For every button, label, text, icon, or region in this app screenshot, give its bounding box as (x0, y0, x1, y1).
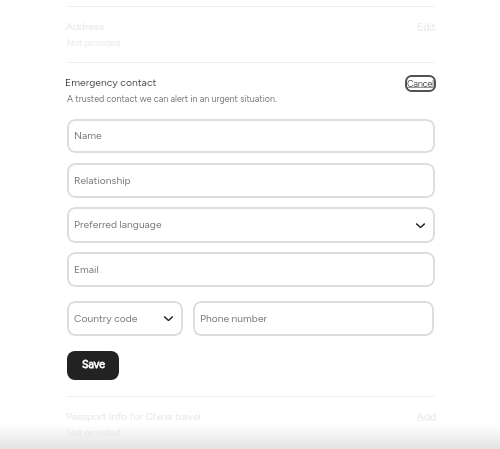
staticText: A trusted contact we can alert in an urg… (67, 93, 277, 104)
button[interactable]: Cancel (405, 75, 436, 92)
staticText: Cancel (407, 78, 434, 89)
staticText: Edit (417, 20, 436, 32)
button[interactable]: Add (413, 407, 433, 424)
staticText: Country code (74, 312, 138, 324)
staticText: Relationship (74, 174, 131, 186)
staticText: Name (74, 129, 102, 141)
button[interactable]: Preferred language (67, 207, 435, 243)
staticText: Save (82, 358, 105, 371)
button[interactable]: Email (67, 252, 435, 287)
staticText: Phone number (200, 312, 267, 324)
staticText: Address (66, 20, 105, 32)
staticText: Emergency contact (65, 76, 157, 88)
button[interactable]: Name (67, 119, 435, 153)
button[interactable]: Save (67, 351, 119, 380)
staticText: Preferred language (74, 218, 162, 230)
button[interactable]: Country code (67, 301, 183, 336)
other: Open Country code picker (164, 314, 173, 323)
staticText: Email (74, 263, 99, 275)
staticText: Not provided (67, 37, 121, 48)
button[interactable]: Passport info for China travel (67, 404, 435, 442)
staticText: Not provided (67, 427, 121, 438)
button[interactable]: Phone number (193, 301, 434, 336)
button[interactable]: Edit (413, 17, 432, 34)
button[interactable]: Relationship (67, 163, 435, 198)
staticText: Passport info for China travel (66, 410, 201, 422)
staticText: Add (417, 410, 437, 422)
other: Open Preferred language picker (416, 221, 425, 230)
